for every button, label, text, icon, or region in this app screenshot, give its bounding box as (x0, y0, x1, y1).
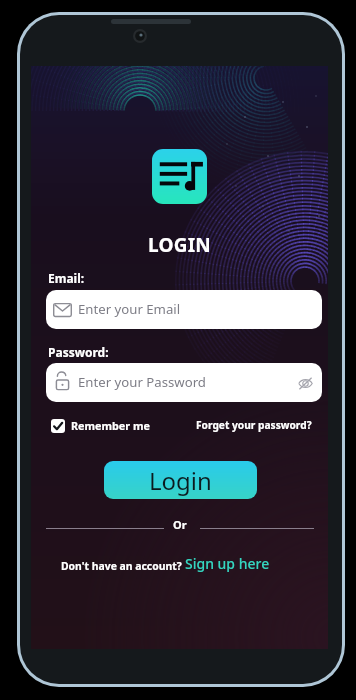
button[interactable]: Remember me (51, 418, 150, 433)
staticText: Don't have an account? (61, 559, 182, 573)
staticText: Enter your Password (78, 373, 206, 391)
staticText: Password: (48, 344, 109, 360)
staticText: Enter your Email (78, 300, 181, 318)
staticText: Forget your password? (196, 418, 312, 432)
staticText: Email: (48, 270, 85, 286)
button[interactable]: Forget your password? (196, 418, 312, 432)
button[interactable]: Login (104, 461, 257, 499)
button[interactable]: Enter your Password (46, 363, 322, 402)
staticText: LOGIN (148, 232, 211, 258)
staticText: Sign up here (185, 554, 270, 573)
other: Toggle password visibility (298, 377, 313, 390)
button[interactable]: Sign up here (185, 554, 270, 573)
staticText: Remember me (71, 418, 150, 433)
staticText: Or (173, 517, 187, 532)
staticText: Login (149, 464, 212, 497)
button[interactable]: Enter your Email (46, 290, 322, 329)
